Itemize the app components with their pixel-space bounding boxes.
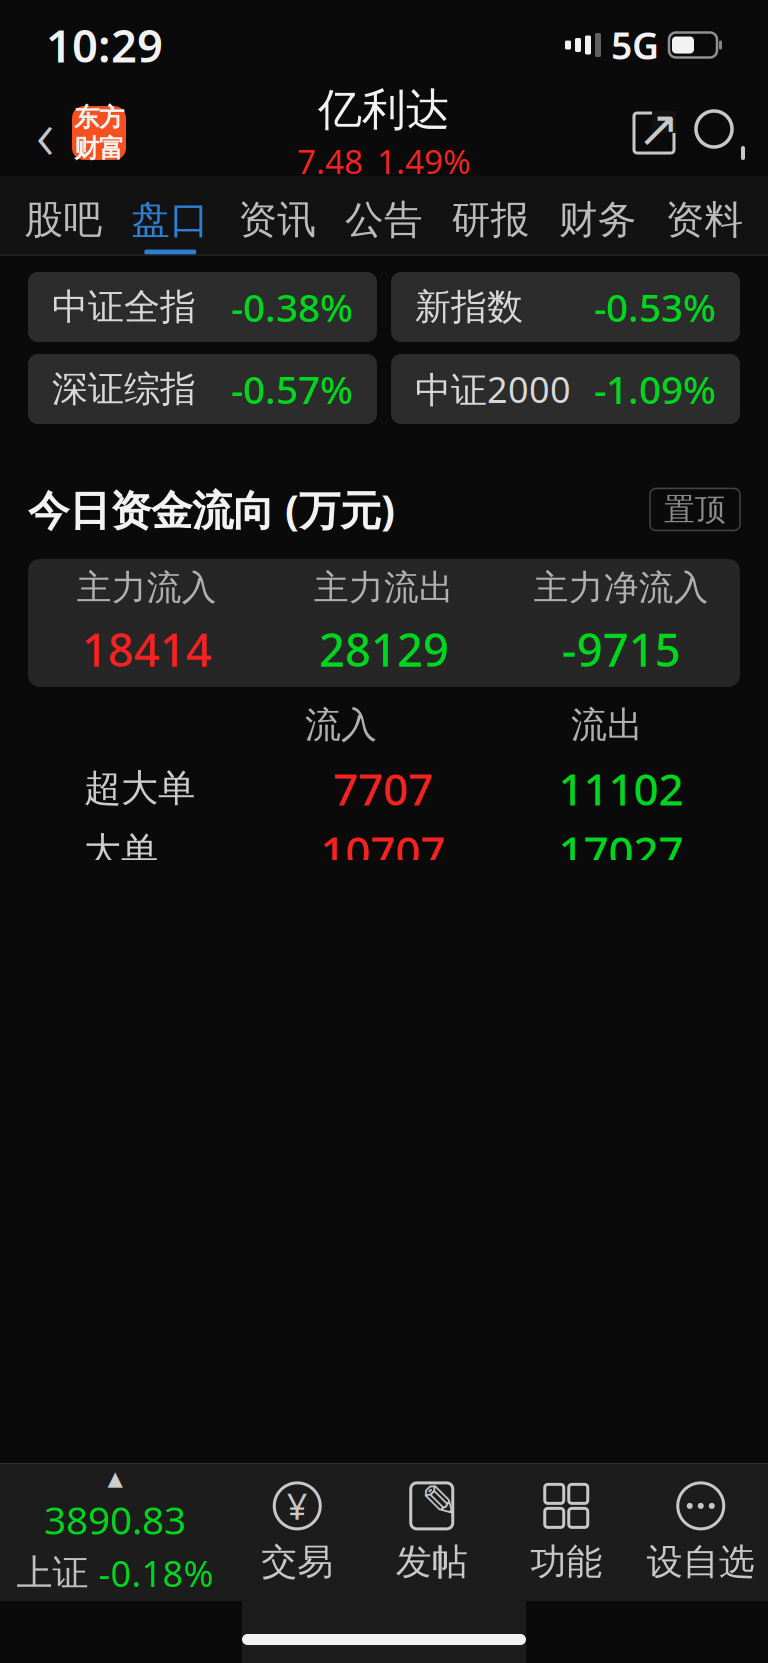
staticText: 发帖 (396, 1540, 468, 1584)
button[interactable]: 公告 (331, 176, 437, 254)
button[interactable]: 研报 (437, 176, 544, 254)
staticText: 亿利达 (318, 83, 450, 137)
button[interactable]: ¥ (230, 1467, 364, 1597)
staticText: ✎ (421, 1476, 459, 1528)
button[interactable]: 搜索 (686, 101, 750, 165)
staticText: -0.53% (594, 281, 716, 333)
button[interactable]: 返回 (18, 96, 72, 170)
staticText: 深证综指 (52, 367, 196, 411)
staticText: 18414 (82, 619, 212, 679)
staticText: 11102 (558, 759, 683, 818)
staticText: 东方 (74, 102, 124, 133)
staticText: 资讯 (238, 196, 316, 243)
staticText: -0.38% (231, 281, 353, 333)
staticText: 功能 (530, 1540, 602, 1584)
staticText: 大单 (84, 828, 158, 874)
staticText: ↗ (637, 100, 679, 158)
staticText: 1.49% (377, 139, 471, 183)
staticText: 主力净流入 (534, 566, 709, 609)
staticText: 置顶 (664, 491, 726, 528)
button[interactable]: 新指数 (391, 272, 740, 342)
button[interactable]: 股吧 (10, 176, 117, 254)
staticText: 17027 (558, 822, 683, 881)
staticText: 新指数 (415, 285, 523, 329)
staticText: ‹ (36, 87, 54, 179)
staticText: 设自选 (647, 1540, 755, 1584)
button[interactable]: 盘口 (117, 176, 224, 254)
staticText: -0.57% (231, 363, 353, 415)
staticText: 主力流出 (314, 566, 454, 609)
button[interactable]: 中证全指 (28, 272, 377, 342)
button[interactable]: 置顶 (650, 488, 740, 530)
button[interactable]: 财务 (544, 176, 651, 254)
staticText: 股吧 (24, 196, 102, 243)
staticText: -0.18% (98, 1549, 213, 1597)
button[interactable]: 资讯 (224, 176, 331, 254)
staticText: 研报 (452, 196, 530, 243)
button[interactable]: 深证综指 (28, 354, 377, 424)
staticText: 公告 (345, 196, 423, 243)
staticText: 财富 (74, 133, 124, 164)
staticText: 10707 (320, 822, 445, 881)
staticText: ▲ (107, 1467, 122, 1490)
staticText: 财务 (559, 196, 637, 243)
button[interactable]: 功能 (499, 1467, 633, 1597)
staticText: 盘口 (131, 196, 209, 243)
staticText: 3890.83 (44, 1494, 186, 1545)
staticText: 今日资金流向 (万元) (28, 482, 395, 537)
staticText: 5G (611, 20, 659, 70)
button[interactable]: ✎ (364, 1467, 499, 1597)
staticText: 资料 (666, 196, 744, 243)
staticText: 流入 (305, 703, 377, 747)
button[interactable]: 设自选 (633, 1467, 768, 1597)
button[interactable]: ▲ (0, 1467, 230, 1597)
staticText: 中证2000 (415, 365, 571, 413)
staticText: 7.48 (297, 139, 363, 183)
staticText: 10:29 (46, 15, 163, 75)
button[interactable]: 中证2000 (391, 354, 740, 424)
staticText: -9715 (562, 619, 681, 679)
button[interactable]: 分享 (622, 101, 686, 165)
button[interactable]: 东方财富 (72, 106, 126, 160)
staticText: ¥ (287, 1482, 308, 1530)
staticText: 交易 (261, 1540, 333, 1584)
staticText: 上证 (16, 1551, 88, 1595)
staticText: 7707 (333, 759, 433, 818)
button[interactable]: 资料 (651, 176, 758, 254)
staticText: 28129 (319, 619, 449, 679)
staticText: 主力流入 (77, 566, 217, 609)
staticText: 流出 (571, 703, 643, 747)
staticText: -1.09% (594, 363, 716, 415)
staticText: 中证全指 (52, 285, 196, 329)
staticText: 超大单 (84, 765, 195, 811)
